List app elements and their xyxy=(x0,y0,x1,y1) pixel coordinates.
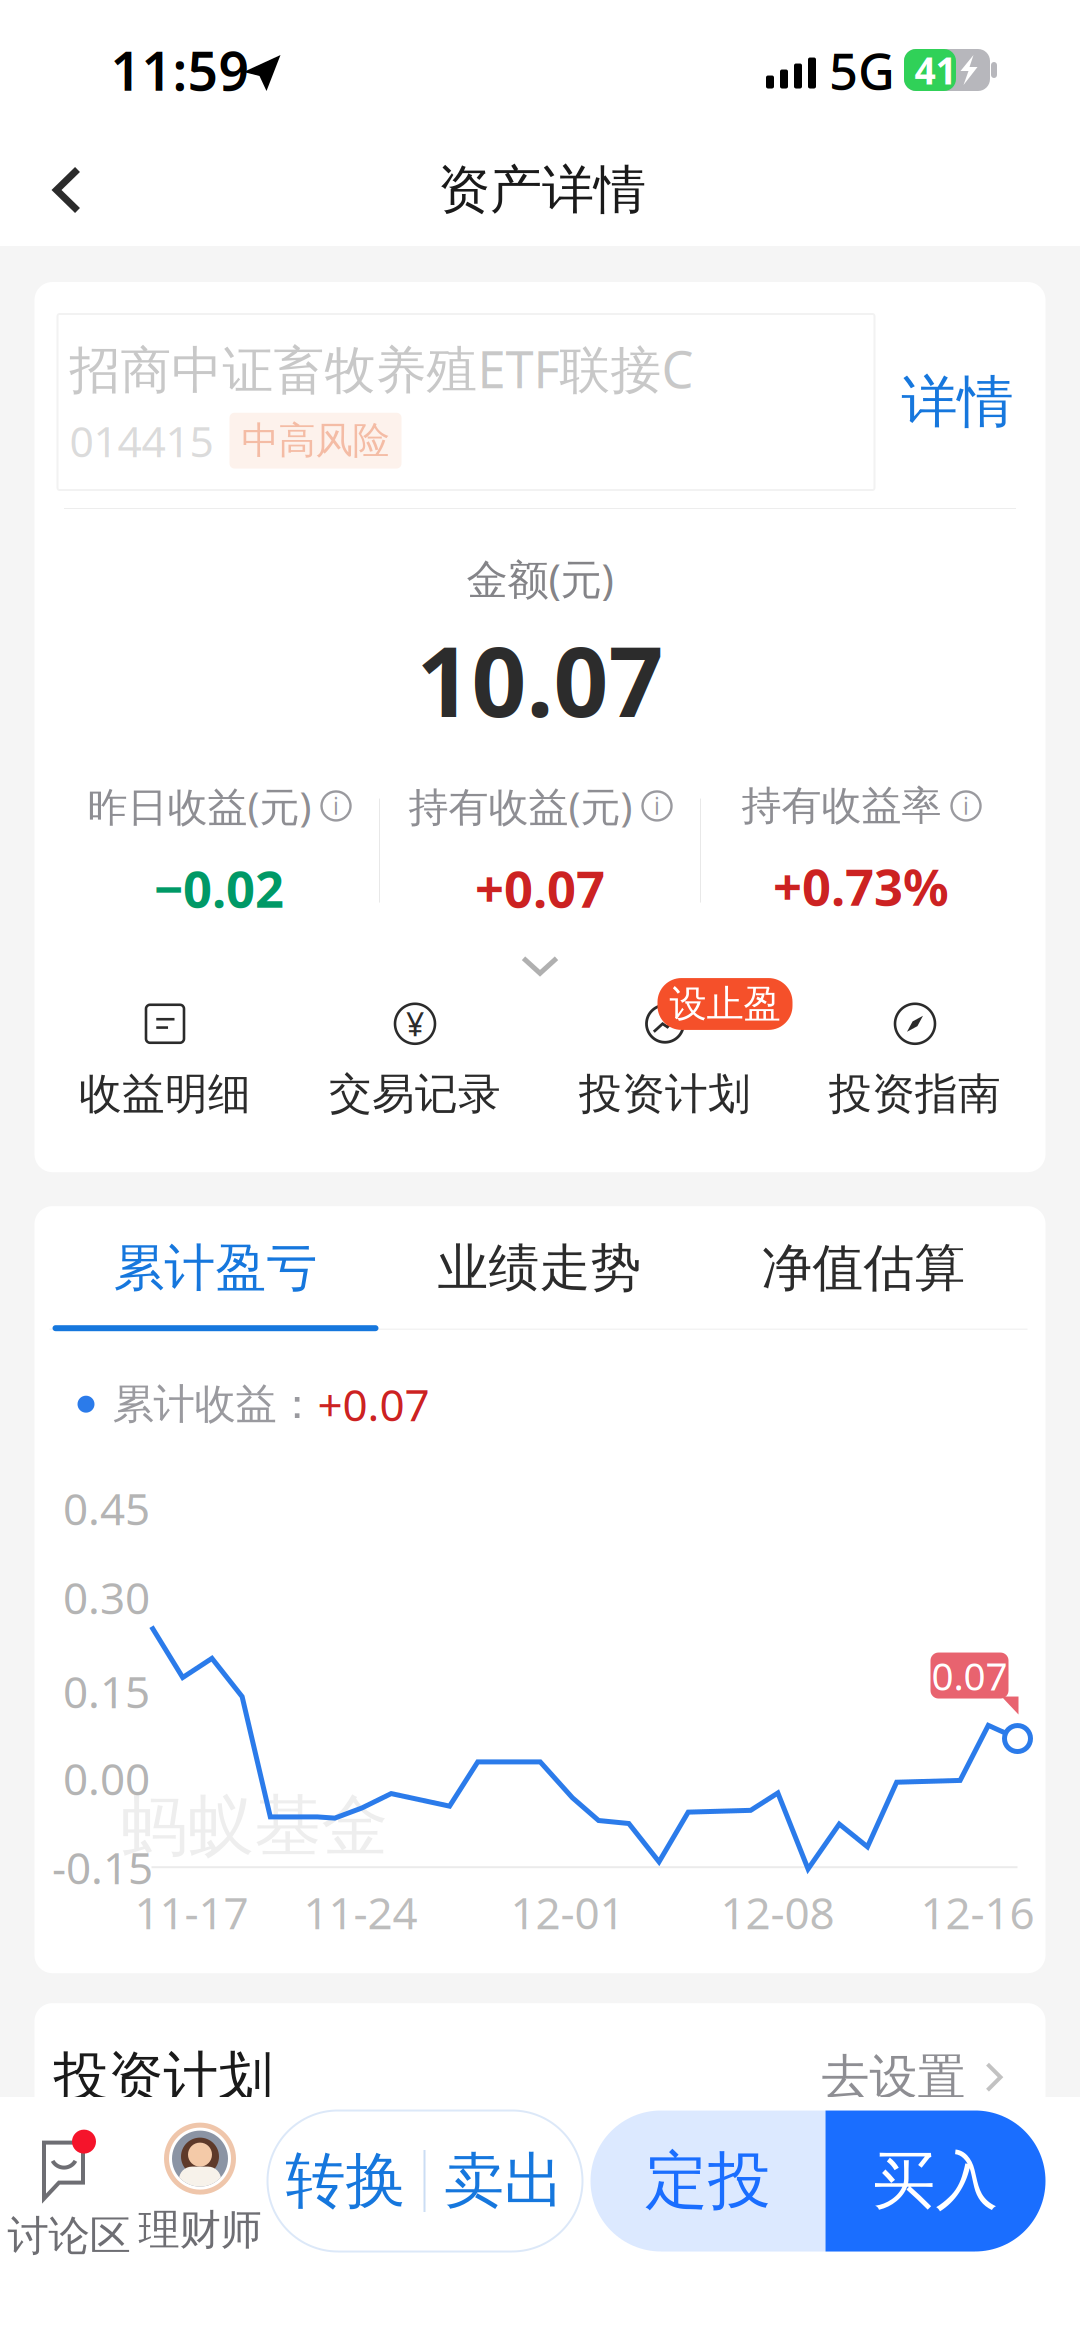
staticText: 0.07 xyxy=(931,1650,1007,1701)
button[interactable]: 收益明细 xyxy=(40,1002,290,1120)
staticText: 12-16 xyxy=(920,1883,1034,1941)
staticText: 持有收益率 xyxy=(741,781,941,830)
staticText: i xyxy=(963,791,969,821)
staticText: 12-01 xyxy=(510,1883,624,1941)
button[interactable]: 投资指南 xyxy=(790,1002,1040,1120)
staticText: 去设置 xyxy=(821,2048,965,2107)
button[interactable]: 转换 xyxy=(267,2110,423,2251)
staticText: 11-17 xyxy=(134,1883,248,1941)
staticText: 招商中证畜牧养殖ETF联接C xyxy=(69,335,693,402)
staticText: 转换 xyxy=(285,2144,405,2218)
button[interactable]: 累计盈亏 xyxy=(52,1207,378,1329)
staticText: 收益明细 xyxy=(79,1068,251,1120)
button[interactable]: 净值估算 xyxy=(700,1207,1026,1329)
button[interactable]: 理财师 xyxy=(125,2129,275,2249)
staticText: 中高风险 xyxy=(241,418,389,464)
staticText: 0.00 xyxy=(63,1749,150,1807)
staticText: 买入 xyxy=(872,2142,998,2219)
staticText: 累计收益： xyxy=(112,1379,317,1430)
staticText: 累计盈亏 xyxy=(113,1237,317,1299)
button[interactable]: 投资计划 xyxy=(540,1002,790,1120)
button[interactable]: 讨论区 xyxy=(0,2135,144,2255)
button[interactable]: 去设置 xyxy=(722,2031,1002,2123)
staticText: 41 xyxy=(914,45,956,95)
staticText: +0.07 xyxy=(475,854,605,922)
staticText: 卖出 xyxy=(444,2144,564,2218)
staticText: 014415 xyxy=(69,412,213,469)
staticText: 12-08 xyxy=(720,1883,834,1941)
button[interactable]: 买入 xyxy=(825,2110,1045,2251)
staticText: 0.45 xyxy=(63,1479,150,1537)
staticText: 11:59 xyxy=(110,35,249,105)
staticText: 理财师 xyxy=(138,2205,261,2255)
button[interactable]: ¥ xyxy=(290,1002,540,1120)
button[interactable]: 业绩走势 xyxy=(376,1207,702,1329)
staticText: i xyxy=(654,791,660,821)
staticText: -0.15 xyxy=(52,1838,153,1896)
staticText: 5G xyxy=(829,36,895,104)
staticText: 定投 xyxy=(645,2142,771,2219)
staticText: +0.73% xyxy=(773,852,949,920)
staticText: 交易记录 xyxy=(329,1068,501,1120)
button[interactable]: 详情 xyxy=(892,314,1022,490)
staticText: 资产详情 xyxy=(438,158,646,222)
staticText: i xyxy=(333,791,339,821)
button[interactable]: 定投 xyxy=(590,2110,825,2251)
staticText: 金额(元) xyxy=(466,551,613,606)
staticText: 0.15 xyxy=(63,1662,150,1720)
button[interactable]: Back xyxy=(12,137,122,243)
staticText: 净值估算 xyxy=(761,1237,965,1299)
button[interactable]: 卖出 xyxy=(425,2110,582,2251)
staticText: 投资计划 xyxy=(53,2044,273,2111)
staticText: 10.07 xyxy=(416,616,663,743)
staticText: 投资计划 xyxy=(579,1068,751,1120)
staticText: 持有收益(元) xyxy=(408,779,632,832)
staticText: +0.07 xyxy=(317,1375,429,1433)
staticText: 投资指南 xyxy=(829,1068,1001,1120)
staticText: 详情 xyxy=(901,368,1013,436)
staticText: 0.30 xyxy=(63,1568,150,1626)
staticText: 设止盈 xyxy=(669,981,780,1027)
staticText: 讨论区 xyxy=(7,2211,130,2261)
staticText: 蚂蚁基金 xyxy=(120,1785,388,1867)
staticText: 昨日收益(元) xyxy=(87,779,311,832)
staticText: 业绩走势 xyxy=(437,1237,641,1299)
staticText: ¥ xyxy=(406,1002,424,1045)
staticText: −0.02 xyxy=(154,854,284,922)
staticText: 11-24 xyxy=(303,1883,417,1941)
